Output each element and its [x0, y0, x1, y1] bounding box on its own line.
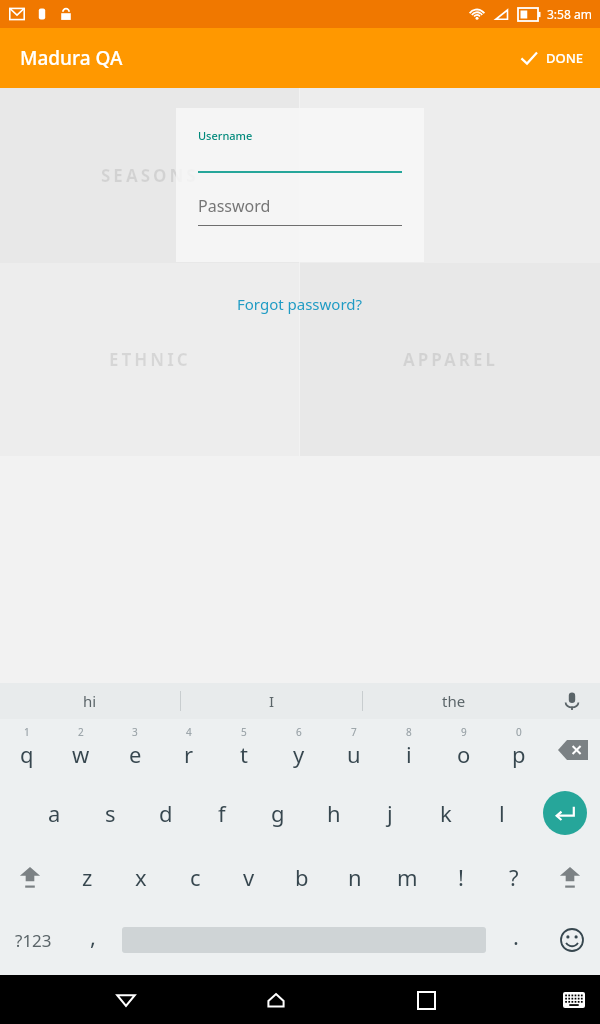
staticText: ETHNIC — [109, 348, 191, 371]
staticText: r — [184, 739, 194, 769]
button[interactable]: 8 — [381, 719, 436, 781]
staticText: a — [48, 798, 61, 828]
staticText: ! — [458, 862, 464, 892]
staticText: 6 — [296, 725, 302, 739]
staticText: 2 — [78, 725, 84, 739]
staticText: d — [159, 798, 173, 828]
button[interactable]: f — [194, 781, 250, 845]
staticText: 7 — [351, 725, 357, 739]
button[interactable]: 1 — [0, 719, 54, 781]
staticText: x — [135, 862, 147, 892]
button[interactable]: Hide keyboard — [552, 978, 596, 1022]
button[interactable]: ! — [434, 845, 487, 909]
staticText: 3 — [132, 725, 138, 739]
staticText: Username — [198, 128, 253, 143]
staticText: ?123 — [15, 929, 52, 952]
button[interactable]: h — [306, 781, 362, 845]
staticText: k — [440, 798, 452, 828]
button[interactable]: d — [138, 781, 194, 845]
button[interactable]: 9 — [436, 719, 491, 781]
button[interactable]: n — [328, 845, 381, 909]
staticText: 3:58 am — [547, 6, 592, 22]
button[interactable]: ? — [487, 845, 540, 909]
staticText: 5 — [241, 725, 247, 739]
staticText: 4 — [186, 725, 192, 739]
button[interactable]: Space — [120, 909, 488, 971]
staticText: s — [105, 798, 116, 828]
button[interactable]: Forgot password? — [229, 286, 371, 322]
staticText: q — [20, 739, 34, 769]
staticText: Madura QA — [20, 45, 123, 71]
staticText: m — [397, 862, 418, 892]
button[interactable]: hi — [0, 683, 180, 719]
button[interactable]: Home — [252, 976, 300, 1024]
staticText: h — [327, 798, 341, 828]
button[interactable]: b — [275, 845, 328, 909]
button[interactable]: Voice input — [544, 683, 600, 719]
button[interactable]: 5 — [216, 719, 271, 781]
button[interactable]: I — [181, 683, 362, 719]
staticText: , — [90, 921, 96, 951]
button[interactable]: 3 — [108, 719, 162, 781]
staticText: n — [348, 862, 362, 892]
button[interactable]: , — [66, 909, 120, 971]
button[interactable]: 2 — [54, 719, 108, 781]
button[interactable]: c — [168, 845, 222, 909]
button[interactable]: 0 — [491, 719, 546, 781]
staticText: I — [269, 691, 275, 711]
button[interactable]: ?123 — [0, 909, 66, 971]
button[interactable]: m — [381, 845, 434, 909]
staticText: DONE — [546, 49, 584, 67]
staticText: APPAREL — [403, 348, 498, 371]
staticText: z — [82, 862, 93, 892]
staticText: Password — [198, 195, 271, 217]
staticText: f — [218, 798, 226, 828]
button[interactable]: z — [60, 845, 114, 909]
button[interactable]: Recent apps — [402, 976, 450, 1024]
staticText: 8 — [406, 725, 412, 739]
button[interactable]: DONE — [503, 36, 600, 80]
staticText: . — [513, 921, 519, 951]
staticText: t — [240, 739, 248, 769]
button[interactable]: g — [250, 781, 306, 845]
button[interactable]: v — [222, 845, 275, 909]
staticText: i — [406, 739, 412, 769]
staticText: ? — [509, 862, 519, 892]
button[interactable]: l — [474, 781, 530, 845]
staticText: p — [512, 739, 526, 769]
staticText: g — [271, 798, 285, 828]
staticText: w — [72, 739, 90, 769]
button[interactable]: k — [418, 781, 474, 845]
staticText: 1 — [24, 725, 30, 739]
staticText: j — [387, 798, 393, 828]
staticText: b — [295, 862, 309, 892]
staticText: v — [243, 862, 255, 892]
button[interactable]: a — [26, 781, 82, 845]
button[interactable]: Enter — [530, 781, 600, 845]
staticText: l — [499, 798, 505, 828]
staticText: e — [129, 739, 142, 769]
staticText: y — [293, 739, 305, 769]
staticText: o — [457, 739, 471, 769]
staticText: SEASONS — [101, 164, 199, 187]
button[interactable]: Backspace — [546, 719, 600, 781]
button[interactable]: 7 — [326, 719, 381, 781]
button[interactable]: the — [363, 683, 544, 719]
staticText: Forgot password? — [237, 294, 363, 314]
button[interactable]: Back — [102, 976, 150, 1024]
staticText: 9 — [461, 725, 467, 739]
staticText: u — [347, 739, 361, 769]
button[interactable]: s — [82, 781, 138, 845]
button[interactable]: 6 — [271, 719, 326, 781]
button[interactable]: . — [488, 909, 544, 971]
button[interactable]: Shift — [0, 845, 60, 909]
button[interactable]: Emoji — [544, 909, 600, 971]
staticText: the — [442, 691, 466, 711]
button[interactable]: j — [362, 781, 418, 845]
button[interactable]: 4 — [162, 719, 216, 781]
staticText: 0 — [516, 725, 522, 739]
staticText: c — [190, 862, 201, 892]
staticText: hi — [83, 691, 97, 711]
button[interactable]: x — [114, 845, 168, 909]
button[interactable]: Shift — [540, 845, 600, 909]
